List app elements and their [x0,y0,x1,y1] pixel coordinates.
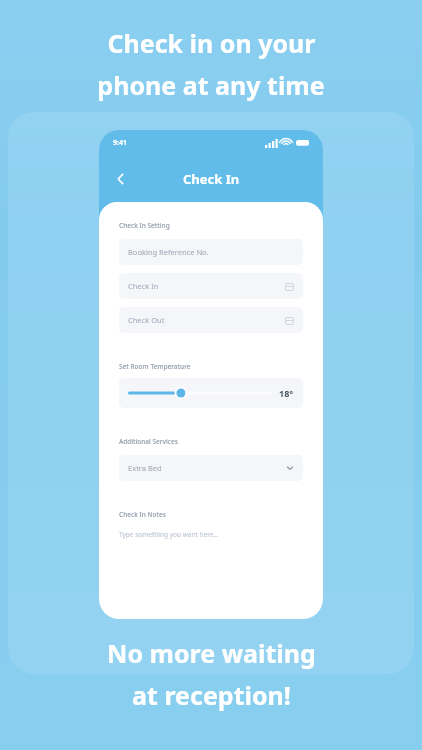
button[interactable]: Check In [119,273,303,299]
staticText: Check In Notes [119,510,303,519]
staticText: Additional Services [119,437,303,446]
staticText: No more waiting [107,636,316,670]
staticText: phone at any time [97,68,325,102]
staticText: Extra Bed [128,463,162,473]
staticText: at reception! [132,678,291,712]
staticText: Check In [183,170,240,188]
button[interactable]: 18° [119,378,303,408]
staticText: 18° [279,387,294,399]
button[interactable]: Check Out [119,307,303,333]
staticText: Check In [128,281,159,291]
staticText: Booking Reference No. [128,247,209,257]
staticText: Check In Setting [119,221,303,230]
button[interactable]: Booking Reference No. [119,239,303,265]
button[interactable]: Back [107,165,135,193]
button[interactable]: Extra Bed [119,455,303,481]
staticText: Set Room Temperature [119,362,303,371]
staticText: Check in on your [107,26,316,60]
staticText: Type something you want here... [119,530,303,539]
staticText: Check Out [128,315,165,325]
staticText: 9:41 [113,138,127,148]
